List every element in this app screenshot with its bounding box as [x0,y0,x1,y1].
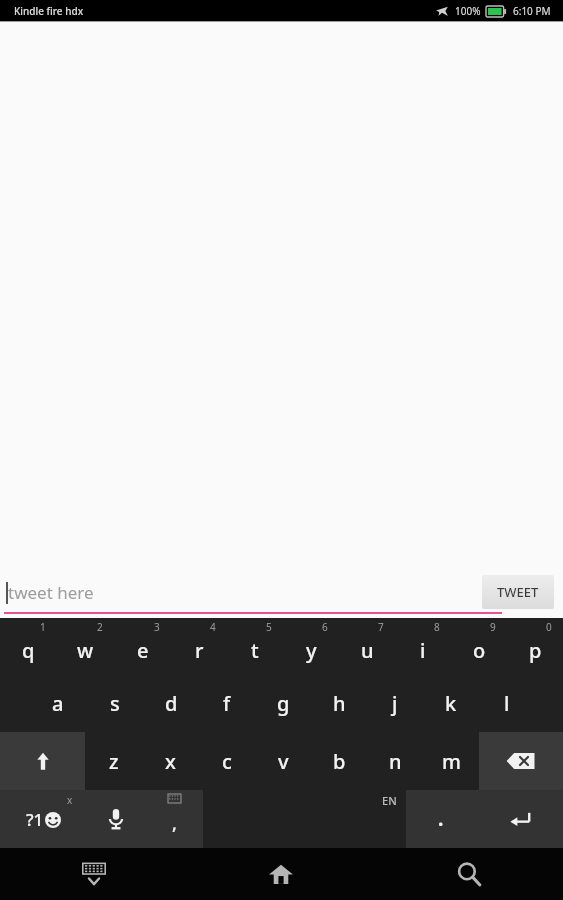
staticText: EN [382,793,397,808]
staticText: t [251,637,259,664]
button[interactable]: h [311,675,367,732]
staticText: s [110,690,120,717]
button[interactable]: Voice input [87,790,145,848]
button[interactable]: e [114,618,171,675]
button[interactable]: w [57,618,114,675]
staticText: j [392,690,398,717]
button[interactable]: Enter [476,790,563,848]
button[interactable]: g [255,675,311,732]
staticText: o [473,637,486,664]
staticText: 6 [322,620,328,634]
staticText: u [361,637,374,664]
button[interactable]: v [255,732,311,790]
button[interactable]: r [171,618,227,675]
button[interactable]: k [423,675,479,732]
staticText: x [67,793,73,807]
button[interactable]: i [395,618,451,675]
staticText: , [172,811,177,836]
staticText: 5 [266,620,272,634]
staticText: z [109,748,119,775]
staticText: 7 [378,620,384,634]
staticText: 6:10 PM [513,4,551,18]
staticText: 1 [40,620,46,634]
button[interactable]: s [86,675,143,732]
button[interactable]: x [142,732,199,790]
staticText: k [445,690,457,717]
staticText: 8 [434,620,440,634]
button[interactable]: q [0,618,57,675]
button[interactable]: EN [203,790,406,848]
button[interactable]: , [145,790,203,848]
button[interactable]: tweet here [4,570,502,614]
button[interactable]: u [339,618,395,675]
button[interactable]: l [479,675,535,732]
button[interactable]: f [199,675,255,732]
button[interactable]: c [199,732,255,790]
button[interactable]: m [423,732,479,790]
button[interactable]: y [283,618,339,675]
button[interactable]: a [29,675,86,732]
staticText: 3 [154,620,160,634]
staticText: v [278,748,289,775]
staticText: Kindle fire hdx [14,4,84,18]
staticText: x [165,748,176,775]
button[interactable]: p [507,618,563,675]
staticText: g [277,690,290,717]
button[interactable]: d [143,675,199,732]
staticText: 0 [546,620,552,634]
staticText: 2 [97,620,103,634]
staticText: TWEET [497,583,539,601]
staticText: ?1 [26,808,44,831]
staticText: l [504,690,510,717]
button[interactable]: TWEET [482,575,554,609]
staticText: a [52,690,64,717]
button[interactable]: Shift [0,732,85,790]
staticText: m [442,748,461,775]
button[interactable]: Home [187,848,375,900]
button[interactable]: j [367,675,423,732]
staticText: f [223,690,231,717]
staticText: 9 [490,620,496,634]
staticText: w [77,637,94,664]
button[interactable]: n [367,732,423,790]
button[interactable]: Hide keyboard [0,848,187,900]
button[interactable]: z [85,732,142,790]
staticText: e [137,637,149,664]
staticText: y [306,637,317,664]
button[interactable]: ?1 [0,790,87,848]
button[interactable]: b [311,732,367,790]
staticText: h [333,690,346,717]
button[interactable]: o [451,618,507,675]
button[interactable]: Search [375,848,563,900]
staticText: 4 [210,620,216,634]
staticText: b [333,748,346,775]
button[interactable]: . [406,790,476,848]
staticText: tweet here [8,581,94,604]
staticText: r [195,637,204,664]
button[interactable]: Backspace [479,732,563,790]
staticText: d [165,690,178,717]
staticText: 100% [455,4,481,18]
staticText: p [529,637,542,664]
staticText: n [389,748,402,775]
staticText: . [438,806,444,832]
staticText: c [222,748,232,775]
staticText: i [420,637,426,664]
button[interactable]: t [227,618,283,675]
staticText: q [22,637,35,664]
